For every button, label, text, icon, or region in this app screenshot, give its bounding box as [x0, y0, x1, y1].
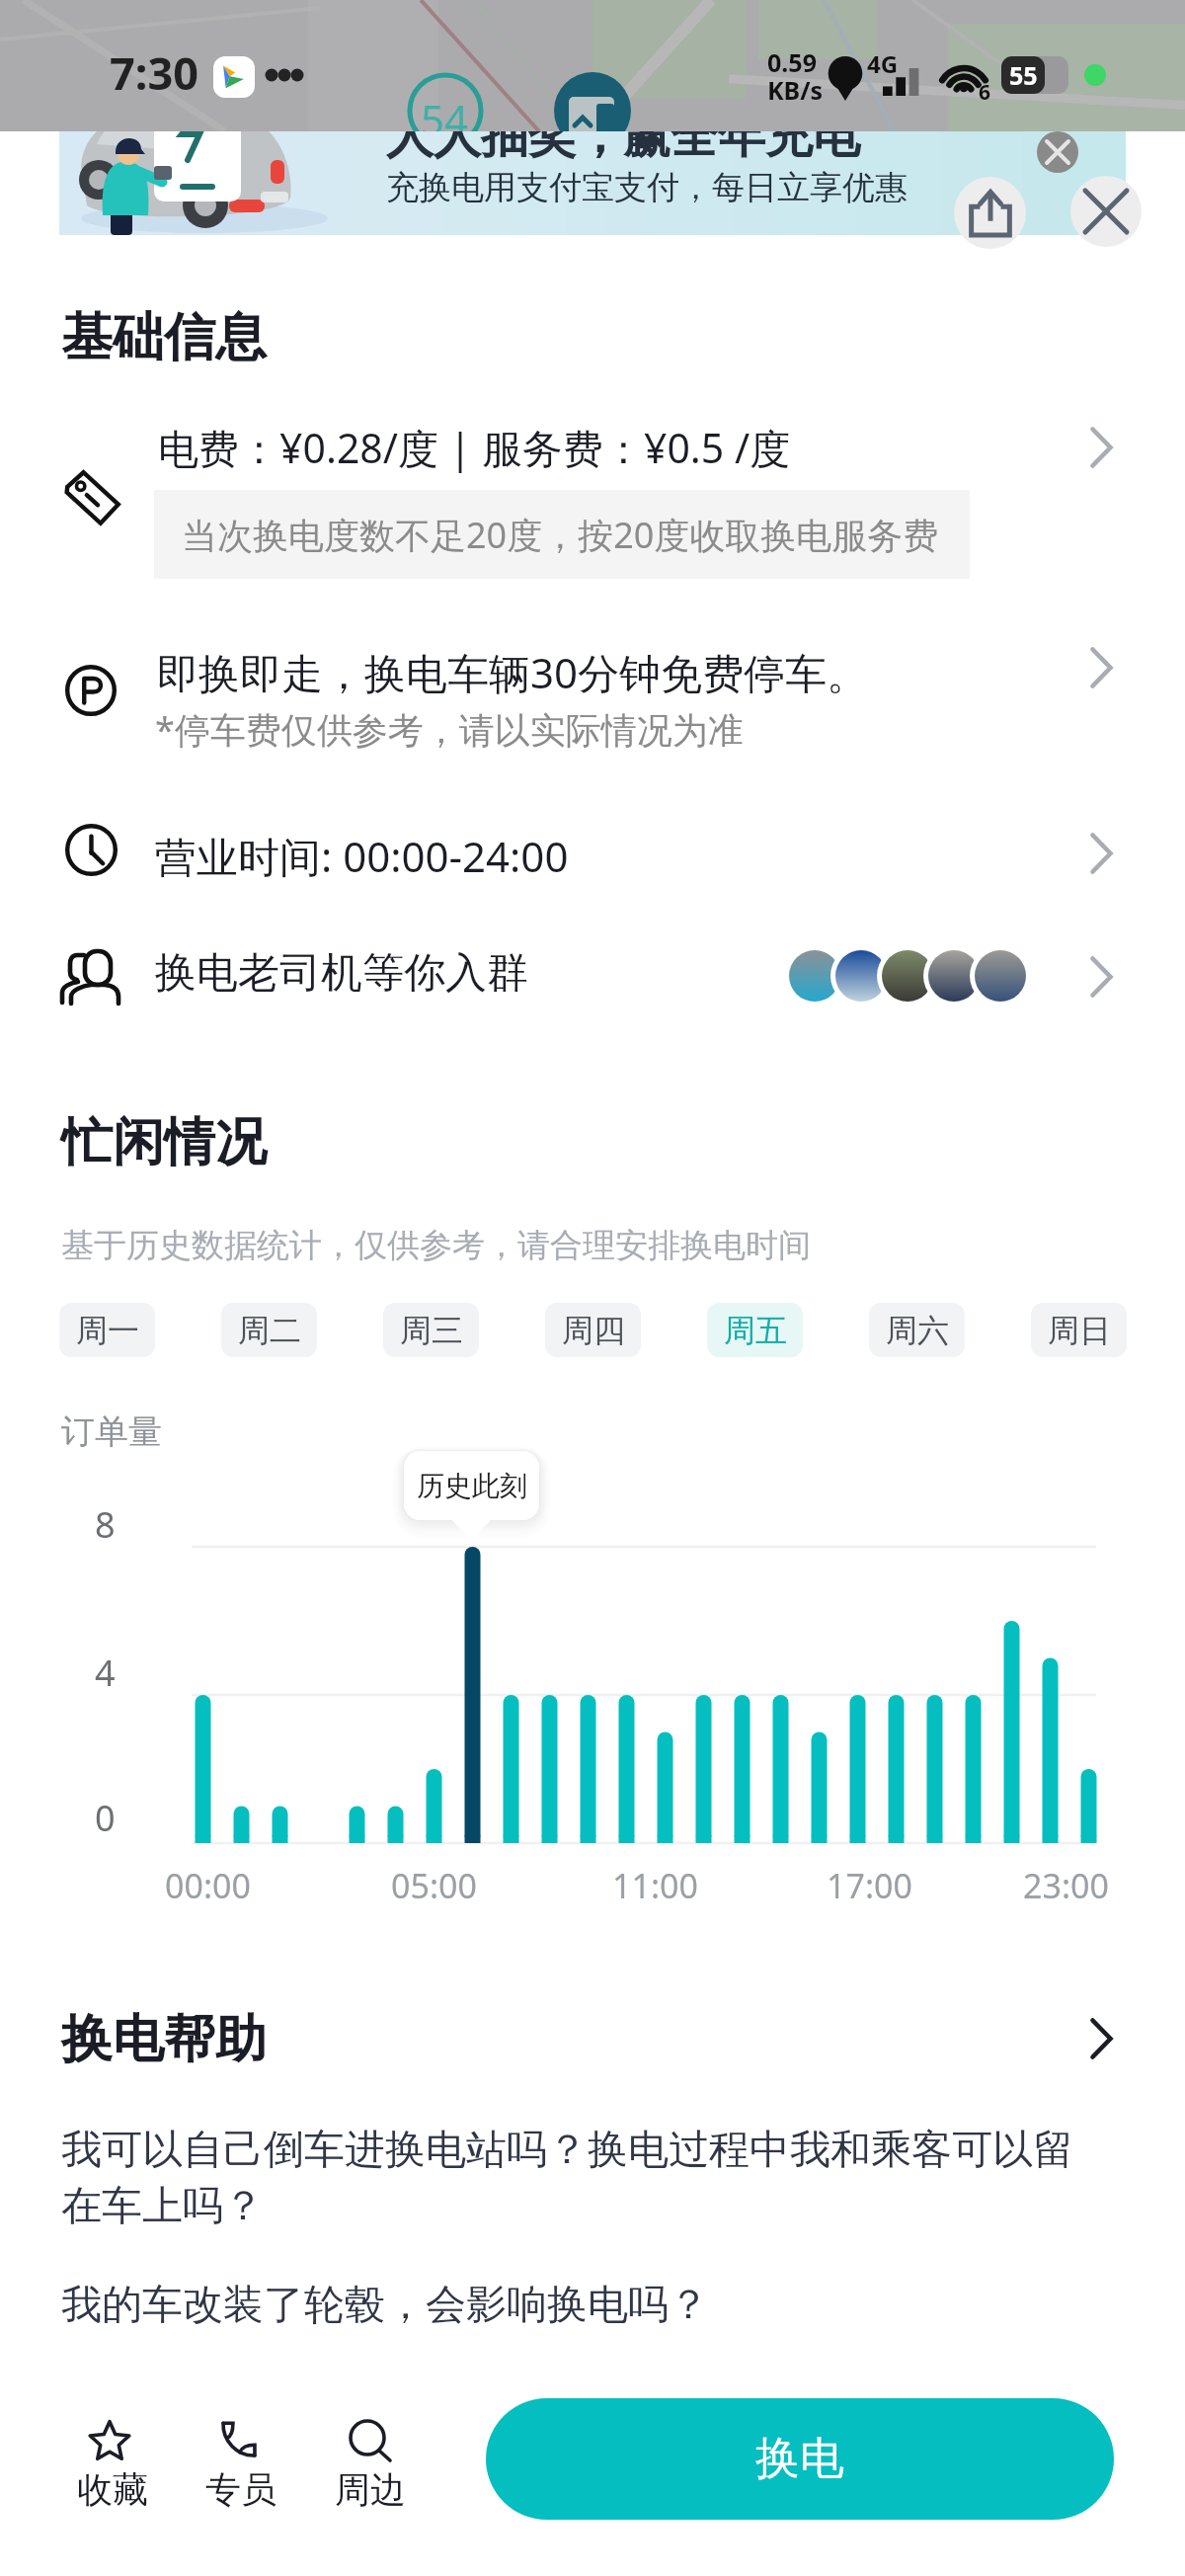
- button[interactable]: 周五: [707, 1303, 803, 1357]
- button[interactable]: 周二: [221, 1303, 317, 1357]
- button[interactable]: 周日: [1031, 1303, 1127, 1357]
- staticText: 23:00: [1023, 1863, 1109, 1908]
- staticText: 收藏: [77, 2467, 148, 2512]
- staticText: 周二: [238, 1311, 301, 1350]
- staticText: 人人抽奖，赢全年充电: [386, 107, 860, 166]
- staticText: 当次换电度数不足20度，按20度收取换电服务费: [182, 511, 939, 559]
- staticText: 基础信息: [61, 305, 267, 370]
- button[interactable]: [315, 2410, 426, 2517]
- staticText: 周边: [335, 2467, 406, 2512]
- staticText: 54: [421, 91, 469, 131]
- staticText: 充换电用支付宝支付，每日立享优惠: [386, 167, 908, 208]
- staticText: 换电老司机等你入群: [155, 947, 528, 1000]
- staticText: 周四: [562, 1311, 625, 1350]
- button[interactable]: 换电: [486, 2398, 1114, 2520]
- staticText: 05:00: [391, 1863, 477, 1908]
- button[interactable]: 我可以自己倒车进换电站吗？换电过程中我和乘客可以留在车上吗？: [61, 2125, 1098, 2231]
- staticText: 订单量: [61, 1410, 162, 1453]
- staticText: 0.59: [767, 45, 817, 79]
- staticText: 周三: [400, 1311, 463, 1350]
- button[interactable]: 换电老司机等你入群: [39, 914, 1145, 1017]
- button[interactable]: 人人抽奖，赢全年充电: [59, 105, 1126, 235]
- button[interactable]: [39, 1995, 1145, 2084]
- button[interactable]: 即换即走，换电车辆30分钟免费停车。: [39, 622, 1145, 761]
- button[interactable]: Close: [1070, 176, 1142, 247]
- staticText: 换电帮助: [61, 2007, 267, 2072]
- staticText: 4G: [867, 47, 899, 80]
- staticText: 基于历史数据统计，仅供参考，请合理安排换电时间: [61, 1225, 811, 1266]
- staticText: 周五: [724, 1311, 787, 1350]
- staticText: *停车费仅供参考，请以实际情况为准: [155, 705, 744, 754]
- staticText: 17:00: [827, 1863, 912, 1908]
- button[interactable]: 周一: [59, 1303, 155, 1357]
- staticText: 7:30: [110, 42, 198, 103]
- staticText: 即换即走，换电车辆30分钟免费停车。: [157, 644, 869, 700]
- staticText: 周一: [76, 1311, 139, 1350]
- button[interactable]: Share: [954, 177, 1026, 249]
- button[interactable]: More: [1066, 941, 1137, 1012]
- staticText: 周六: [886, 1311, 949, 1350]
- staticText: 55: [1009, 58, 1038, 92]
- staticText: 周日: [1048, 1311, 1111, 1350]
- button[interactable]: 周六: [869, 1303, 965, 1357]
- button[interactable]: 电费：¥0.28/度 | 服务费：¥0.5 /度: [39, 407, 1145, 595]
- staticText: 换电: [755, 2431, 844, 2487]
- staticText: 0: [95, 1794, 116, 1842]
- staticText: KB/s: [767, 73, 824, 107]
- button[interactable]: 周三: [383, 1303, 479, 1357]
- staticText: 8: [95, 1500, 116, 1549]
- button[interactable]: More: [1066, 412, 1137, 483]
- button[interactable]: [186, 2410, 296, 2517]
- staticText: 专员: [205, 2467, 276, 2512]
- staticText: 营业时间: 00:00-24:00: [155, 828, 569, 884]
- staticText: 历史此刻: [417, 1469, 527, 1503]
- button[interactable]: Dismiss ad: [1037, 131, 1078, 173]
- staticText: 6: [979, 78, 991, 107]
- staticText: 忙闲情况: [61, 1110, 267, 1175]
- button[interactable]: [57, 2410, 168, 2517]
- button[interactable]: 周四: [545, 1303, 641, 1357]
- staticText: 电费：¥0.28/度 | 服务费：¥0.5 /度: [158, 420, 791, 475]
- button[interactable]: More: [1066, 2003, 1137, 2074]
- button[interactable]: More: [1066, 632, 1137, 703]
- staticText: 11:00: [612, 1863, 698, 1908]
- button[interactable]: More: [1066, 818, 1137, 889]
- button[interactable]: 营业时间: 00:00-24:00: [39, 805, 1145, 899]
- staticText: 4: [95, 1649, 116, 1697]
- staticText: 00:00: [165, 1863, 251, 1908]
- button[interactable]: 我的车改装了轮毂，会影响换电吗？: [61, 2280, 709, 2331]
